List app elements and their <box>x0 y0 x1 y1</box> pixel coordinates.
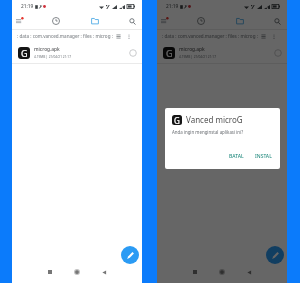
button[interactable]: New <box>121 246 139 264</box>
button[interactable]: BATAL <box>226 152 247 161</box>
button[interactable]: Recents <box>188 265 202 279</box>
staticText: Anda ingin menginstal aplikasi ini? <box>172 129 244 135</box>
button[interactable]: Files <box>232 13 248 29</box>
staticText: Vanced microG <box>186 114 243 125</box>
button[interactable]: Home <box>70 265 84 279</box>
button[interactable]: Menu <box>12 13 28 29</box>
staticText: 4.19MB | 21/04/21 21:17 <box>34 55 71 59</box>
staticText: 21:19 <box>166 3 179 10</box>
staticText: : data : com.vanced.manager : files : mi… <box>17 33 113 39</box>
button[interactable]: New <box>266 246 284 264</box>
button[interactable]: INSTAL <box>252 152 275 161</box>
button[interactable]: Recent files <box>48 13 64 29</box>
button[interactable]: Recent files <box>193 13 209 29</box>
button[interactable]: Search <box>124 13 140 29</box>
staticText: : data : com.vanced.manager : files : mi… <box>162 33 258 39</box>
staticText: microg.apk <box>34 46 60 53</box>
staticText: INSTAL <box>255 153 272 160</box>
staticText: microg.apk <box>179 46 205 53</box>
staticText: G <box>174 115 180 125</box>
button[interactable]: Home <box>215 265 229 279</box>
staticText: G <box>166 47 173 59</box>
button[interactable]: Menu <box>157 13 173 29</box>
staticText: 4.19MB | 21/04/21 21:17 <box>179 55 216 59</box>
button[interactable]: G <box>12 42 142 63</box>
button[interactable]: Back <box>242 265 256 279</box>
button[interactable]: Recents <box>43 265 57 279</box>
staticText: 21:19 <box>21 3 34 10</box>
button[interactable]: Back <box>97 265 111 279</box>
staticText: BATAL <box>229 153 244 160</box>
staticText: G <box>21 47 28 59</box>
button[interactable]: Files <box>87 13 103 29</box>
button[interactable]: G <box>157 42 287 63</box>
button[interactable]: Search <box>269 13 285 29</box>
